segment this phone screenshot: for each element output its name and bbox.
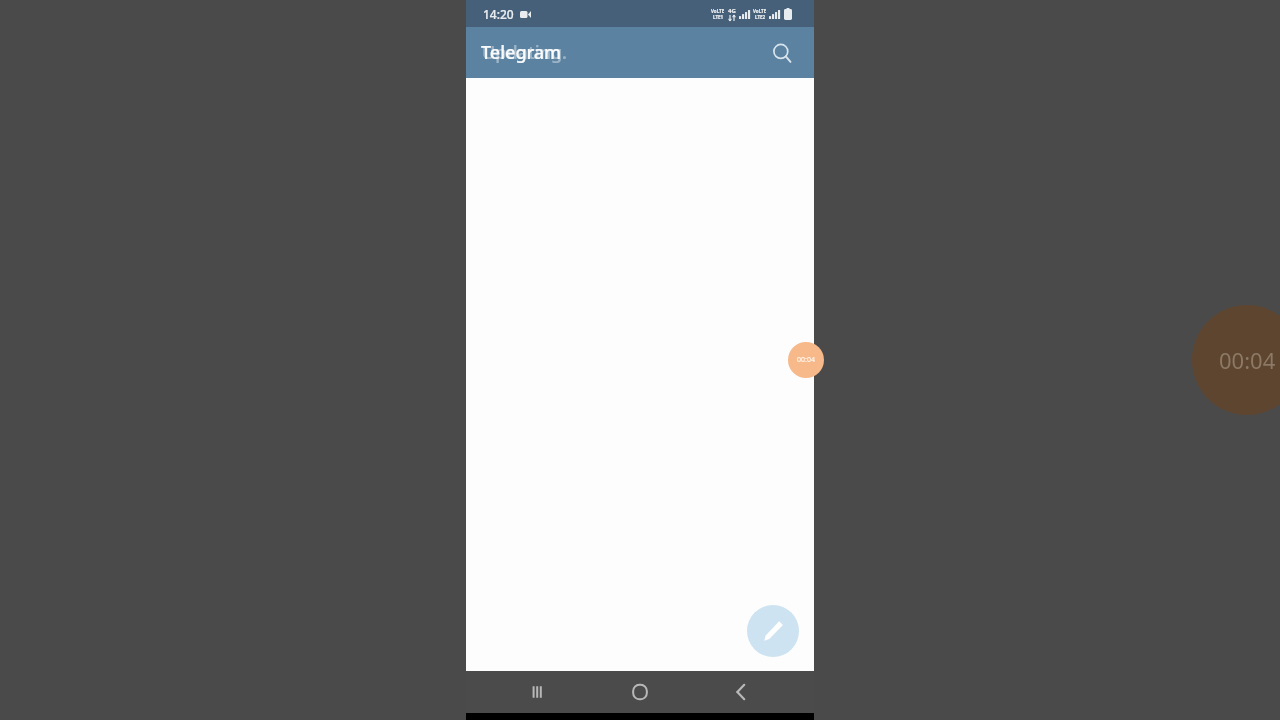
staticText: LTE1 [713,14,724,20]
staticText: VoLTE [753,8,767,14]
button[interactable]: Search [760,31,804,75]
button[interactable]: Back [713,671,769,713]
staticText: 00:04 [797,355,815,365]
staticText: VoLTE [711,8,725,14]
staticText: LTE2 [755,14,766,20]
staticText: 00:04 [1219,345,1276,375]
staticText: Updating. [482,40,567,65]
button[interactable]: Home [612,671,668,713]
staticText: 4G [728,7,736,15]
staticText: Telegram [481,40,562,65]
button[interactable]: Recent apps [511,671,567,713]
button[interactable]: New message [747,605,799,657]
button[interactable]: Recording timer [1192,305,1280,415]
button[interactable]: Recording timer [788,342,824,378]
staticText: 14:20 [483,6,514,22]
